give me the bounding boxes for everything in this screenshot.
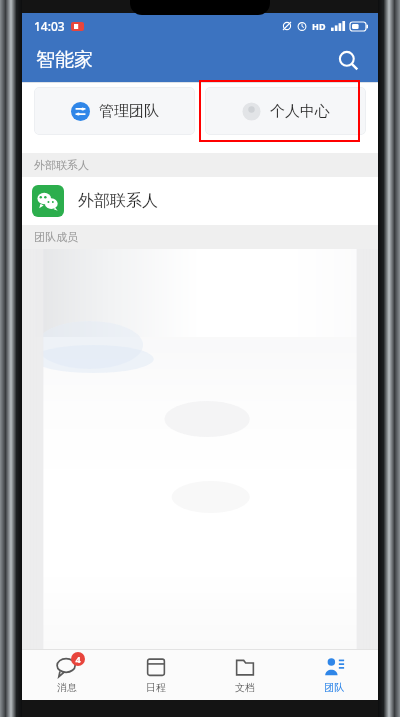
button[interactable]: Search <box>328 40 368 80</box>
staticText: 日程 <box>146 681 166 694</box>
staticText: 文档 <box>235 681 255 694</box>
staticText: 外部联系人 <box>78 191 158 211</box>
button[interactable]: 个人中心 <box>205 87 366 135</box>
staticText: 团队成员 <box>34 230 78 244</box>
button[interactable]: 文档 <box>200 650 289 700</box>
button[interactable]: 团队 <box>289 650 378 700</box>
staticText: 14:03 <box>34 18 65 34</box>
staticText: 管理团队 <box>99 102 159 121</box>
staticText: 消息 <box>57 681 77 694</box>
staticText: 个人中心 <box>270 102 330 121</box>
staticText: 智能家 <box>36 48 93 72</box>
button[interactable]: 4 <box>22 650 111 700</box>
button[interactable]: 日程 <box>111 650 200 700</box>
button[interactable]: 管理团队 <box>34 87 195 135</box>
staticText: 外部联系人 <box>34 158 89 172</box>
staticText: HD <box>312 20 326 32</box>
staticText: 4 <box>75 653 81 665</box>
button[interactable]: 外部联系人 <box>22 177 378 225</box>
staticText: 团队 <box>324 681 344 694</box>
